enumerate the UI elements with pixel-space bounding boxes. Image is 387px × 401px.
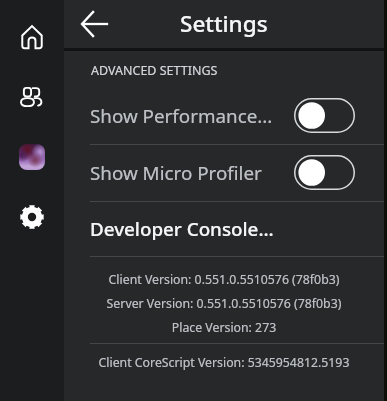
staticText: Show Performance... — [90, 103, 273, 129]
button[interactable]: Friends — [8, 75, 52, 119]
staticText: Server Version: 0.551.0.5510576 (78f0b3) — [64, 295, 384, 312]
staticText: Client Version: 0.551.0.5510576 (78f0b3) — [64, 271, 384, 288]
staticText: Place Version: 273 — [64, 319, 384, 336]
staticText: Settings — [180, 8, 268, 39]
button[interactable]: Avatar — [19, 144, 45, 170]
staticText: Developer Console... — [90, 216, 274, 242]
button[interactable]: Developer Console... — [64, 201, 387, 256]
button[interactable]: Show Performance... — [64, 87, 387, 144]
staticText: Client CoreScript Version: 5345954812.51… — [64, 354, 384, 371]
staticText: ADVANCED SETTINGS — [91, 62, 218, 79]
staticText: Show Micro Profiler — [90, 160, 262, 186]
button[interactable]: Show Micro Profiler — [64, 144, 387, 201]
button[interactable]: Settings — [10, 195, 54, 239]
button[interactable]: Home — [10, 15, 54, 59]
button[interactable]: Back — [73, 2, 117, 46]
